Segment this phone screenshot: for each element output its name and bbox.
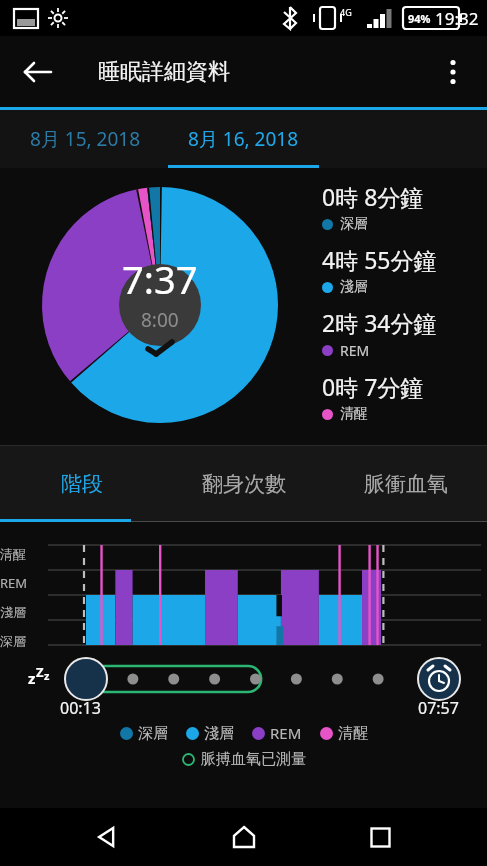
staticText: 脈搏血氧已測量 — [201, 750, 306, 769]
button[interactable]: Home — [214, 808, 274, 866]
staticText: 清醒 — [340, 405, 368, 423]
staticText: REM — [270, 723, 302, 743]
staticText: 階段 — [61, 471, 103, 497]
button[interactable]: Recent apps — [350, 808, 410, 866]
staticText: 睡眠詳細資料 — [98, 58, 230, 86]
staticText: z — [44, 668, 50, 683]
button[interactable]: Back — [77, 808, 137, 866]
staticText: 94% — [408, 11, 431, 26]
staticText: 深層 — [340, 215, 368, 233]
staticText: 4時 55分鐘 — [322, 244, 437, 275]
button[interactable]: 8月 16, 2018 — [163, 110, 323, 168]
button[interactable]: 翻身次數 — [163, 446, 325, 522]
button[interactable]: 脈衝血氧 — [325, 446, 487, 522]
staticText: 4G — [340, 6, 352, 18]
staticText: 8:00 — [141, 307, 179, 333]
staticText: 脈衝血氧 — [364, 471, 448, 497]
button[interactable]: More options — [431, 50, 475, 94]
staticText: 00:13 — [60, 697, 101, 719]
staticText: REM — [340, 341, 370, 360]
staticText: 8月 15, 2018 — [30, 126, 141, 152]
staticText: 2時 34分鐘 — [322, 307, 437, 338]
staticText: Z — [36, 663, 44, 681]
staticText: 0時 7分鐘 — [322, 371, 424, 402]
staticText: 淺層 — [340, 278, 368, 296]
staticText: 19:32 — [435, 7, 479, 30]
button[interactable]: Back — [14, 48, 62, 96]
staticText: 清醒 — [0, 546, 26, 562]
button[interactable]: 8月 15, 2018 — [0, 110, 170, 168]
staticText: z — [28, 668, 36, 688]
button[interactable]: 階段 — [0, 446, 163, 522]
staticText: REM — [0, 574, 28, 592]
staticText: 7:37 — [122, 253, 198, 305]
staticText: 翻身次數 — [202, 471, 286, 497]
staticText: 淺層 — [204, 724, 234, 743]
staticText: 深層 — [0, 633, 26, 649]
staticText: 清醒 — [338, 724, 368, 743]
staticText: 淺層 — [0, 604, 26, 620]
staticText: 07:57 — [418, 697, 459, 719]
staticText: 8月 16, 2018 — [188, 126, 299, 152]
staticText: 0時 8分鐘 — [322, 181, 424, 212]
staticText: 深層 — [138, 724, 168, 743]
